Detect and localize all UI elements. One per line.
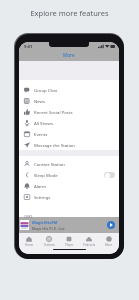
button[interactable]: Home [19,235,39,247]
button[interactable]: News [19,95,119,106]
staticText: Stations [44,243,55,247]
button[interactable]: MagicHitsFM [19,217,119,233]
button[interactable]: Events [19,128,119,139]
staticText: Message the Station [34,142,76,148]
staticText: News [34,98,46,104]
button[interactable]: Contact Station [19,158,119,169]
staticText: Player [65,243,74,247]
button[interactable]: Settings [19,191,119,202]
staticText: More [105,243,113,247]
button[interactable]: Podcasts [79,235,99,247]
staticText: All Shows [34,120,54,126]
staticText: Podcasts [83,243,96,247]
staticText: Contact Station [34,161,65,167]
staticText: LINKS [24,215,33,219]
button[interactable]: Message the Station [19,139,119,150]
staticText: Sleep Mode [34,172,58,178]
staticText: More [63,52,75,58]
staticText: 9:41 [24,44,33,50]
staticText: Events [34,131,48,137]
button[interactable]: More [99,235,119,247]
staticText: Recent Social Posts [34,109,73,115]
button[interactable]: Group Chat [19,84,119,95]
button[interactable]: Play [107,221,115,229]
staticText: Magic Hits 91.8 - Live [32,226,65,230]
staticText: Alarm [34,183,47,189]
staticText: Group Chat [34,87,58,93]
button[interactable]: Sleep Mode [19,169,119,180]
button[interactable]: All Shows [19,117,119,128]
button[interactable]: Stations [39,235,59,247]
button[interactable]: Player [59,235,79,247]
staticText: Explore more features [0,8,139,18]
staticText: Home [25,243,34,247]
staticText: MagicHitsFM [32,220,58,225]
button[interactable]: Alarm [19,180,119,191]
staticText: Settings [34,194,51,200]
button[interactable]: Recent Social Posts [19,106,119,117]
